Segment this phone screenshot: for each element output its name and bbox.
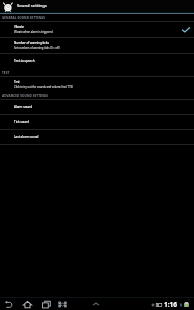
button[interactable]: Alarm sound	[0, 100, 194, 114]
staticText: Vibrate	[14, 25, 25, 29]
staticText: Vibrate when alarm is triggered	[14, 30, 53, 34]
button[interactable]: System status	[151, 300, 189, 309]
staticText: ADVANCED SOUND SETTINGS	[2, 94, 48, 98]
staticText: TEST	[2, 71, 10, 75]
staticText: Alarm sound	[14, 105, 33, 109]
staticText: 1:16	[164, 300, 177, 309]
staticText: Last alarm sound	[14, 135, 39, 139]
button[interactable]: Show notifications	[90, 298, 102, 310]
staticText: Set numbers of warning ticks (0 = off)	[14, 46, 60, 50]
staticText: Test	[14, 80, 20, 84]
button[interactable]: Back	[2, 298, 14, 310]
button[interactable]: Vibrate	[0, 22, 194, 37]
button[interactable]: Text-to-speech	[0, 54, 194, 67]
button[interactable]: Home	[21, 298, 33, 310]
staticText: Text-to-speech	[14, 59, 35, 63]
button[interactable]: Screenshot	[56, 298, 68, 310]
button[interactable]: Recent apps	[40, 298, 52, 310]
staticText: Click to try out the sounds and volume (…	[14, 85, 73, 89]
staticText: Number of warning ticks	[14, 41, 49, 45]
staticText: Sound settings	[17, 3, 47, 9]
button[interactable]: Test	[0, 77, 194, 92]
button[interactable]: Number of warning ticks	[0, 38, 194, 53]
button[interactable]: Last alarm sound	[0, 130, 194, 144]
button[interactable]: Tick sound	[0, 115, 194, 129]
staticText: Tick sound	[14, 120, 30, 124]
staticText: GENERAL SOUND SETTINGS	[2, 16, 46, 20]
